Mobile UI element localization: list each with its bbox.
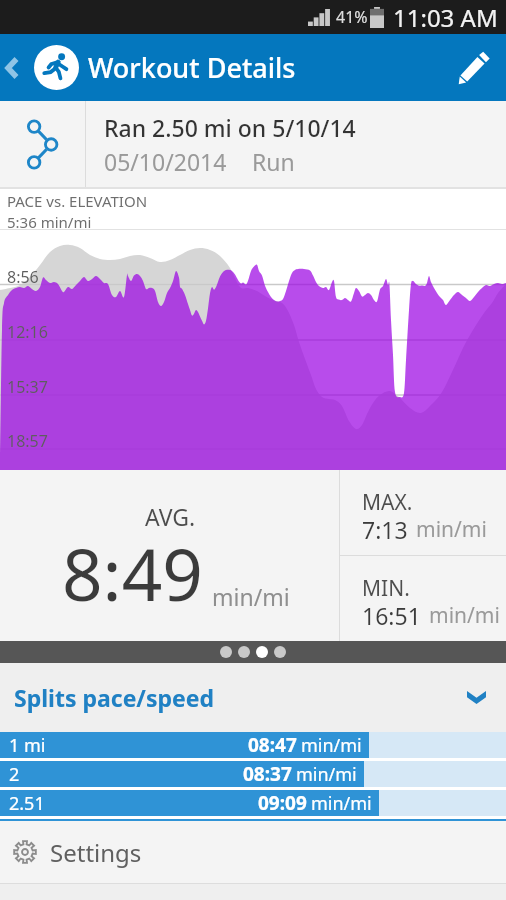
staticText: Run bbox=[252, 146, 295, 177]
button[interactable]: Back bbox=[0, 34, 23, 101]
button[interactable]: MAX. bbox=[340, 470, 506, 555]
button[interactable]: Page 3 bbox=[256, 646, 268, 658]
button[interactable]: Settings bbox=[0, 821, 506, 883]
staticText: Settings bbox=[50, 836, 142, 869]
staticText: min/mi bbox=[212, 581, 290, 612]
staticText: 1 mi bbox=[9, 733, 46, 758]
staticText: min/mi bbox=[296, 762, 357, 787]
staticText: AVG. bbox=[145, 501, 196, 532]
staticText: 2 bbox=[9, 762, 20, 787]
staticText: 08:37 bbox=[243, 761, 292, 787]
staticText: 8:49 bbox=[62, 525, 203, 622]
staticText: Ran 2.50 mi on 5/10/14 bbox=[104, 112, 356, 143]
button[interactable]: 1 mi bbox=[0, 732, 506, 758]
staticText: 09:09 bbox=[258, 790, 307, 816]
button[interactable]: Page 1 bbox=[220, 646, 232, 658]
button[interactable]: Page 2 bbox=[238, 646, 250, 658]
staticText: Splits pace/speed bbox=[14, 682, 214, 713]
button[interactable]: MIN. bbox=[340, 556, 506, 641]
staticText: min/mi bbox=[311, 791, 372, 816]
button[interactable]: Page 4 bbox=[274, 646, 286, 658]
staticText: 16:51 bbox=[362, 600, 421, 631]
button[interactable]: AVG. bbox=[0, 470, 339, 641]
staticText: 12:16 bbox=[7, 321, 48, 343]
staticText: min/mi bbox=[416, 515, 487, 544]
button[interactable]: 2 bbox=[0, 761, 506, 787]
button[interactable]: Edit bbox=[439, 34, 506, 101]
staticText: 2.51 bbox=[9, 791, 45, 816]
staticText: 5:36 min/mi bbox=[7, 212, 92, 229]
staticText: 7:13 bbox=[362, 514, 408, 545]
button[interactable]: Activity type bbox=[34, 45, 79, 90]
staticText: PACE vs. ELEVATION bbox=[7, 191, 148, 211]
staticText: 11:03 AM bbox=[393, 1, 498, 34]
button[interactable]: Splits pace/speed bbox=[0, 663, 506, 732]
staticText: MAX. bbox=[362, 488, 413, 517]
staticText: 18:57 bbox=[7, 430, 48, 452]
staticText: 41% bbox=[336, 6, 368, 28]
staticText: min/mi bbox=[301, 733, 362, 758]
staticText: 15:37 bbox=[7, 376, 48, 398]
staticText: MIN. bbox=[362, 574, 410, 603]
other: Share route bbox=[0, 101, 85, 187]
button[interactable]: Share route bbox=[0, 101, 506, 187]
staticText: 8:56 bbox=[7, 266, 39, 288]
staticText: 05/10/2014 bbox=[104, 146, 227, 177]
button[interactable]: 2.51 bbox=[0, 790, 506, 816]
staticText: Workout Details bbox=[88, 49, 296, 86]
staticText: min/mi bbox=[429, 601, 500, 630]
staticText: 08:47 bbox=[248, 732, 297, 758]
